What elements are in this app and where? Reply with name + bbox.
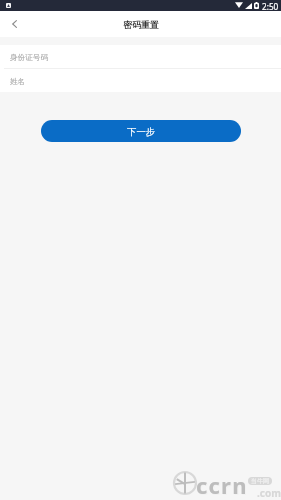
staticText: ccrn (196, 470, 248, 500)
staticText: 当牛网 (251, 477, 269, 485)
staticText: 身份证号码 (10, 53, 48, 63)
button[interactable]: Back (0, 11, 26, 37)
staticText: 姓名 (10, 77, 26, 87)
button[interactable]: 下一步 (41, 120, 241, 142)
staticText: 下一步 (127, 126, 156, 138)
staticText: ccrn (197, 471, 249, 500)
button[interactable]: 姓名 (0, 69, 281, 92)
button[interactable]: 身份证号码 (0, 45, 281, 68)
staticText: 2:50 (262, 1, 279, 12)
staticText: 密码重置 (123, 20, 159, 31)
staticText: .com (257, 486, 281, 500)
